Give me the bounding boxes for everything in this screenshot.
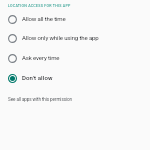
staticText: See all apps with this permission bbox=[8, 97, 72, 102]
toggle[interactable]: Allow all the time bbox=[0, 8, 150, 28]
staticText: Don't allow bbox=[22, 74, 53, 81]
staticText: Allow only while using the app bbox=[22, 34, 99, 41]
toggle[interactable]: Ask every time bbox=[0, 47, 150, 67]
toggle[interactable]: Allow only while using the app bbox=[0, 27, 150, 47]
staticText: LOCATION ACCESS FOR THIS APP bbox=[8, 4, 71, 8]
staticText: Allow all the time bbox=[22, 15, 66, 22]
button[interactable]: See all apps with this permission bbox=[0, 93, 150, 105]
staticText: Ask every time bbox=[22, 54, 60, 61]
toggle[interactable]: Don't allow bbox=[0, 67, 150, 87]
